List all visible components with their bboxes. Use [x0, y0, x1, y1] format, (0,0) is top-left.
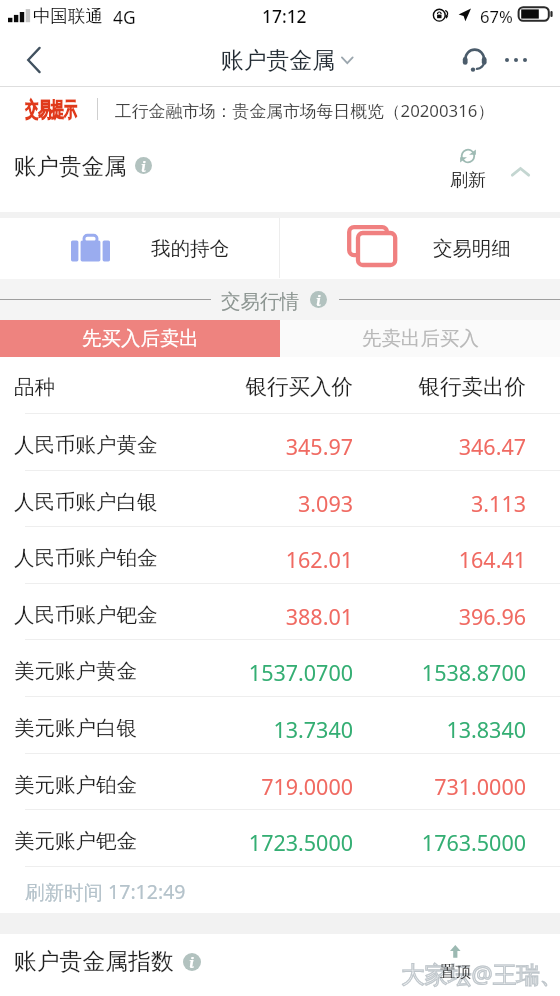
staticText: 美元账户白银	[14, 715, 137, 741]
staticText: 346.47	[326, 432, 526, 461]
button[interactable]	[280, 218, 560, 278]
staticText: 人民币账户钯金	[14, 602, 158, 628]
button[interactable]: More options	[493, 41, 539, 79]
staticText: 388.01	[153, 602, 353, 631]
staticText: 13.8340	[326, 715, 526, 744]
staticText: 17:12	[262, 4, 307, 28]
staticText: 先卖出后买入	[362, 326, 479, 351]
staticText: 我的持仓	[151, 236, 229, 261]
staticText: 1763.5000	[326, 828, 526, 857]
staticText: 美元账户铂金	[14, 772, 137, 798]
button[interactable]: 人民币账户黄金	[0, 413, 560, 470]
staticText: 1537.0700	[153, 658, 353, 687]
staticText: 731.0000	[326, 772, 526, 801]
button[interactable]: 账户贵金属	[221, 34, 354, 86]
staticText: 刷新	[450, 169, 486, 192]
button[interactable]: 美元账户钯金	[0, 809, 560, 866]
button[interactable]	[0, 218, 280, 278]
staticText: 交易行情	[221, 289, 299, 314]
staticText: 品种	[14, 374, 55, 400]
button[interactable]: Customer service	[455, 41, 495, 79]
staticText: 交易提示	[25, 97, 77, 123]
staticText: 银行买入价	[153, 373, 353, 400]
staticText: 银行卖出价	[326, 373, 526, 400]
staticText: i	[141, 157, 146, 174]
staticText: 3.113	[326, 489, 526, 518]
staticText: 人民币账户白银	[14, 489, 158, 515]
staticText: i	[189, 953, 195, 971]
button[interactable]: Collapse	[502, 155, 538, 189]
staticText: i	[316, 291, 321, 308]
staticText: 人民币账户铂金	[14, 545, 158, 571]
staticText: 工行金融市场：贵金属市场每日概览（20200316）	[115, 99, 495, 122]
button[interactable]	[0, 87, 560, 131]
staticText: 4G	[113, 5, 136, 29]
staticText: 置顶	[440, 962, 471, 982]
button[interactable]: 美元账户铂金	[0, 753, 560, 810]
staticText: 人民币账户黄金	[14, 432, 158, 458]
button[interactable]: 先卖出后买入	[280, 320, 560, 357]
button[interactable]: 人民币账户白银	[0, 470, 560, 527]
button[interactable]: 置顶	[436, 945, 474, 982]
staticText: 美元账户黄金	[14, 658, 137, 684]
staticText: 67%	[480, 5, 513, 28]
staticText: 719.0000	[153, 772, 353, 801]
staticText: 刷新时间 17:12:49	[25, 878, 186, 905]
staticText: 美元账户钯金	[14, 828, 137, 854]
staticText: 1723.5000	[153, 828, 353, 857]
staticText: 账户贵金属	[14, 152, 127, 180]
button[interactable]: Back	[13, 41, 55, 79]
button[interactable]: 人民币账户钯金	[0, 583, 560, 640]
staticText: 396.96	[326, 602, 526, 631]
button[interactable]: 美元账户白银	[0, 696, 560, 753]
staticText: 中国联通	[33, 5, 103, 27]
button[interactable]: 人民币账户铂金	[0, 526, 560, 583]
staticText: 账户贵金属	[221, 46, 335, 75]
staticText: 1538.8700	[326, 658, 526, 687]
staticText: 先买入后卖出	[82, 326, 199, 351]
staticText: 3.093	[153, 489, 353, 518]
button[interactable]: 美元账户黄金	[0, 639, 560, 696]
staticText: 162.01	[153, 545, 353, 574]
staticText: 164.41	[326, 545, 526, 574]
button[interactable]: 先买入后卖出	[0, 320, 280, 357]
staticText: 13.7340	[153, 715, 353, 744]
button[interactable]: 刷新	[447, 147, 489, 192]
staticText: 大家坛@王瑞、	[401, 958, 560, 990]
staticText: 交易明细	[433, 236, 511, 261]
staticText: 345.97	[153, 432, 353, 461]
staticText: 账户贵金属指数	[14, 947, 174, 976]
